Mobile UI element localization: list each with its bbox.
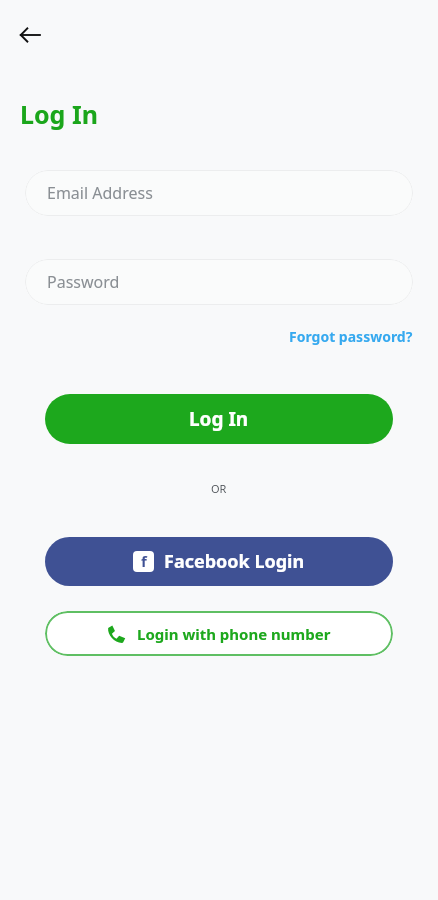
button[interactable]: Password (25, 259, 413, 305)
button[interactable]: Log In (45, 394, 393, 444)
staticText: Log In (189, 406, 249, 432)
staticText: Forgot password? (289, 327, 413, 346)
staticText: Password (47, 271, 120, 293)
button[interactable]: f (45, 537, 393, 586)
staticText: f (141, 551, 147, 571)
staticText: Facebook Login (164, 549, 305, 574)
staticText: Email Address (47, 182, 153, 204)
button[interactable]: Email Address (25, 170, 413, 216)
button[interactable]: Back (10, 15, 50, 55)
staticText: OR (211, 481, 227, 496)
staticText: Log In (20, 97, 98, 131)
staticText: Login with phone number (137, 624, 331, 644)
button[interactable]: Forgot password? (250, 324, 413, 348)
button[interactable]: Login with phone number (45, 611, 393, 656)
